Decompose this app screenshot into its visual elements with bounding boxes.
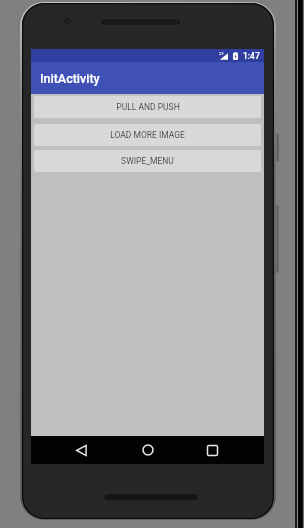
staticText: 1:47 <box>243 51 260 61</box>
staticText: InitActivity <box>40 71 100 86</box>
button[interactable]: Back <box>60 436 103 464</box>
staticText: SWIPE_MENU <box>121 156 174 166</box>
button[interactable]: LOAD MORE IMAGE <box>34 124 261 146</box>
button[interactable]: Home <box>126 436 169 464</box>
button[interactable]: PULL AND PUSH <box>34 96 261 118</box>
button[interactable]: Recent apps <box>191 436 234 464</box>
staticText: LOAD MORE IMAGE <box>110 130 185 140</box>
staticText: PULL AND PUSH <box>116 102 180 112</box>
button[interactable]: SWIPE_MENU <box>34 150 261 172</box>
